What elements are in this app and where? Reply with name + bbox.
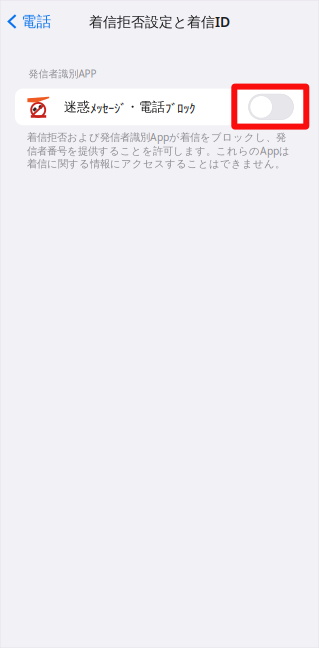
- staticText: 着信拒否および発信者識別Appが着信をブロックし、発信者番号を提供することを許可…: [27, 130, 290, 170]
- staticText: 発信者識別APP: [28, 67, 96, 80]
- staticText: 迷惑ﾒｯｾｰｼﾞ・電話ﾌﾞﾛｯｸ: [64, 99, 195, 115]
- button[interactable]: 迷惑ﾒｯｾｰｼﾞ・電話ﾌﾞﾛｯｸ: [15, 89, 304, 125]
- staticText: 電話: [22, 12, 52, 30]
- staticText: 着信拒否設定と着信ID: [89, 12, 230, 31]
- button[interactable]: 電話: [0, 3, 61, 39]
